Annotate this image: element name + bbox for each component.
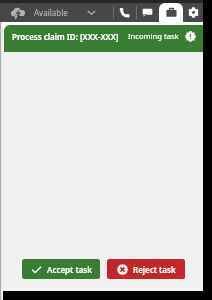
staticText: Process claim ID: [XXX-XXX]	[12, 31, 119, 42]
staticText: Incoming task	[128, 31, 179, 41]
button[interactable]: Tasks	[159, 3, 183, 22]
button[interactable]: Messages	[136, 3, 159, 22]
button[interactable]: Process claim ID: [XXX-XXX]	[4, 25, 203, 52]
button[interactable]: Accept task	[22, 259, 100, 279]
button[interactable]: Available	[0, 3, 113, 22]
staticText: Accept task	[47, 264, 92, 275]
button[interactable]: Call	[113, 3, 136, 22]
button[interactable]: Reject task	[107, 259, 185, 279]
button[interactable]: Settings	[183, 3, 203, 22]
staticText: Available	[34, 7, 68, 18]
staticText: Reject task	[133, 264, 176, 275]
